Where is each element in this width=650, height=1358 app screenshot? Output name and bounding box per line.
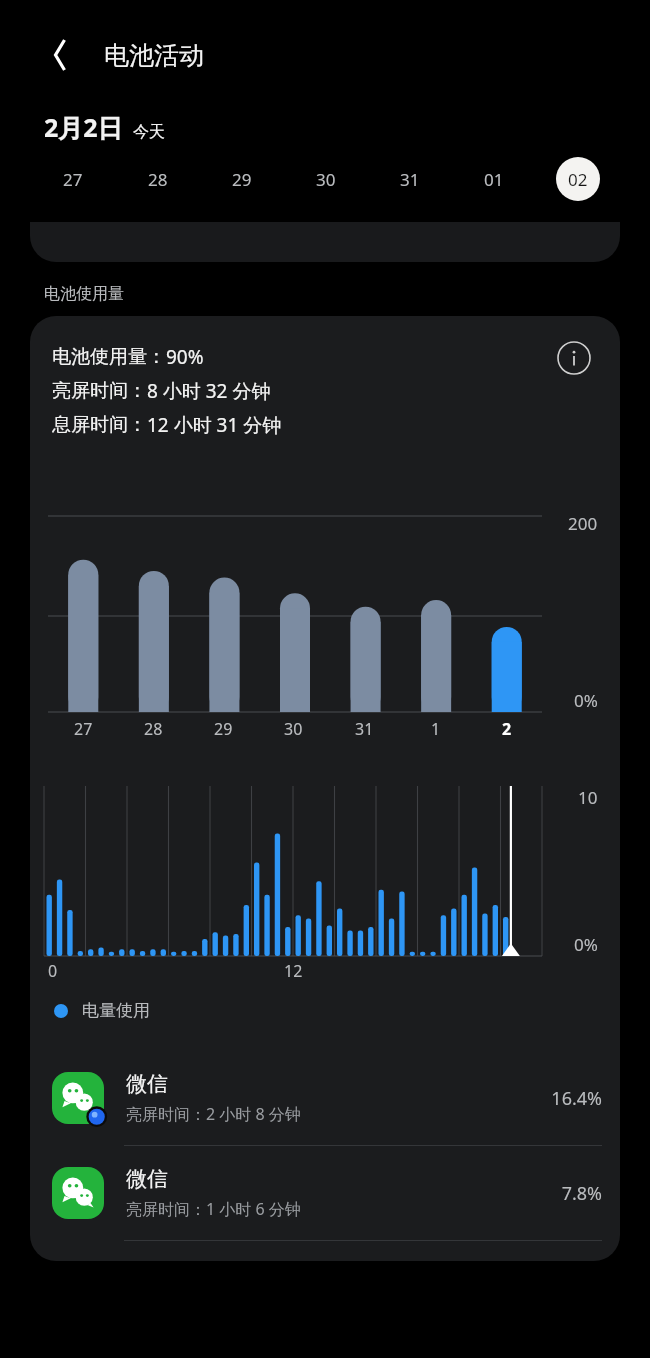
button[interactable]: 01 <box>452 144 536 214</box>
staticText: 1 <box>431 718 441 740</box>
button[interactable]: 30 <box>284 144 368 214</box>
staticText: 2月2日 <box>44 110 123 144</box>
staticText: 29 <box>214 718 233 740</box>
staticText: 电池使用量 <box>44 284 124 304</box>
staticText: 7.8% <box>561 1181 602 1206</box>
staticText: 01 <box>484 168 504 191</box>
staticText: 0% <box>574 689 598 712</box>
staticText: 亮屏时间： <box>52 379 147 403</box>
staticText: 电量使用 <box>82 1000 150 1021</box>
staticText: 28 <box>148 168 168 191</box>
button[interactable]: Back <box>30 25 90 85</box>
button[interactable]: 28 <box>115 144 200 214</box>
staticText: 2 <box>502 718 512 740</box>
button[interactable]: 31 <box>368 144 452 214</box>
staticText: 16.4% <box>551 1086 602 1111</box>
staticText: 31 <box>355 718 374 740</box>
staticText: 微信 <box>126 1166 168 1192</box>
staticText: 27 <box>63 168 83 191</box>
staticText: 今天 <box>133 122 165 142</box>
staticText: 亮屏时间：1 小时 6 分钟 <box>126 1198 301 1220</box>
staticText: 微信 <box>126 1071 168 1097</box>
button[interactable]: 27 <box>30 144 115 214</box>
staticText: 30 <box>284 718 303 740</box>
staticText: 8 小时 32 分钟 <box>147 378 271 404</box>
staticText: 电池活动 <box>104 40 204 71</box>
staticText: 31 <box>400 168 420 191</box>
staticText: 28 <box>144 718 163 740</box>
staticText: 02 <box>568 168 588 191</box>
staticText: 电池使用量： <box>52 345 166 369</box>
button[interactable]: 微信 <box>30 1146 620 1240</box>
staticText: 200 <box>568 512 598 535</box>
staticText: 12 小时 31 分钟 <box>147 412 282 438</box>
button[interactable]: Info <box>554 338 594 378</box>
staticText: 12 <box>284 960 303 982</box>
button[interactable]: 02 <box>536 144 620 214</box>
staticText: 29 <box>232 168 252 191</box>
staticText: 27 <box>74 718 93 740</box>
staticText: 30 <box>316 168 336 191</box>
staticText: 0% <box>574 933 598 956</box>
staticText: 10 <box>578 786 598 809</box>
staticText: 息屏时间： <box>52 413 147 437</box>
button[interactable]: 29 <box>200 144 284 214</box>
staticText: 亮屏时间：2 小时 8 分钟 <box>126 1103 301 1125</box>
button[interactable]: 电量使用 <box>54 1000 150 1021</box>
staticText: 0 <box>48 960 58 982</box>
button[interactable]: 微信 <box>30 1051 620 1145</box>
button[interactable] <box>30 222 620 262</box>
staticText: 90% <box>166 344 204 370</box>
